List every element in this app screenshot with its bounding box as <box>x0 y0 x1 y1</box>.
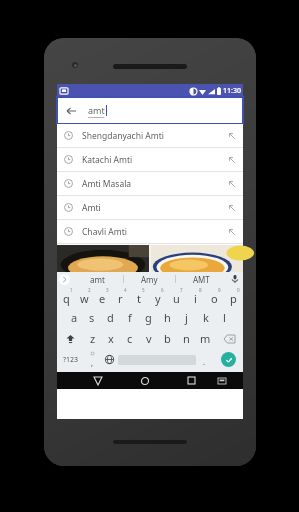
button[interactable]: ?123 <box>57 349 84 370</box>
button[interactable] <box>151 245 243 272</box>
staticText: s <box>89 310 95 325</box>
staticText: f <box>128 310 132 325</box>
button[interactable]: 7 <box>167 286 186 307</box>
staticText: , <box>91 357 94 368</box>
button[interactable]: m <box>196 328 215 349</box>
button[interactable]: z <box>84 328 102 349</box>
button[interactable]: Home <box>128 372 161 389</box>
staticText: r <box>118 291 123 306</box>
staticText: o <box>211 291 218 306</box>
staticText: y <box>155 291 161 306</box>
staticText: 6 <box>161 287 164 293</box>
button[interactable]: 6 <box>148 286 167 307</box>
staticText: e <box>99 291 106 306</box>
button[interactable]: Amti Masala <box>57 172 243 195</box>
button[interactable]: b <box>158 328 177 349</box>
staticText: n <box>183 331 190 346</box>
staticText: l <box>223 310 226 325</box>
button[interactable]: Hide keyboard <box>208 372 236 389</box>
staticText: Amy <box>141 274 158 285</box>
staticText: Chavli Amti <box>82 226 228 238</box>
staticText: 9 <box>218 287 221 293</box>
button[interactable]: x <box>102 328 120 349</box>
staticText: u <box>173 291 180 306</box>
button[interactable]: s <box>83 307 101 328</box>
staticText: 11:30 <box>223 86 241 96</box>
staticText: Katachi Amti <box>82 154 228 166</box>
button[interactable]: Back <box>81 372 114 389</box>
staticText: g <box>145 310 152 325</box>
button[interactable]: 9 <box>205 286 224 307</box>
staticText: m <box>200 331 211 346</box>
button[interactable]: 5 <box>129 286 148 307</box>
button[interactable]: 0 <box>224 286 243 307</box>
button[interactable]: Amy <box>124 272 175 286</box>
staticText: 7 <box>180 287 183 293</box>
button[interactable]: More suggestions <box>57 272 71 286</box>
button[interactable]: Shengdanyachi Amti <box>57 124 243 147</box>
button[interactable]: Back <box>57 97 243 124</box>
staticText: amt <box>90 274 105 285</box>
staticText: amt <box>88 104 105 116</box>
button[interactable]: Chavli Amti <box>57 220 243 243</box>
staticText: w <box>80 291 89 306</box>
button[interactable]: Amti <box>57 196 243 219</box>
button[interactable]: d <box>101 307 120 328</box>
staticText: p <box>230 291 237 306</box>
button[interactable]: Shift <box>57 328 84 349</box>
button[interactable]: 8 <box>186 286 205 307</box>
button[interactable]: 4 <box>111 286 129 307</box>
staticText: d <box>107 310 114 325</box>
staticText: a <box>71 310 78 325</box>
staticText: z <box>90 331 96 346</box>
button[interactable]: Search <box>213 349 243 370</box>
button[interactable]: l <box>215 307 234 328</box>
staticText: Amti Masala <box>82 178 228 190</box>
staticText: 8 <box>199 287 202 293</box>
button[interactable]: g <box>139 307 158 328</box>
button[interactable]: 2 <box>75 286 93 307</box>
button[interactable]: 1 <box>57 286 75 307</box>
button[interactable]: Back <box>64 104 78 118</box>
button[interactable]: Comma <box>84 349 101 370</box>
button[interactable]: n <box>177 328 196 349</box>
staticText: Shengdanyachi Amti <box>82 130 228 142</box>
button[interactable]: Katachi Amti <box>57 148 243 171</box>
staticText: t <box>137 291 141 306</box>
button[interactable]: AMT <box>176 272 227 286</box>
button[interactable]: Voice input <box>227 272 243 286</box>
button[interactable]: v <box>139 328 158 349</box>
button[interactable]: j <box>177 307 196 328</box>
button[interactable]: a <box>65 307 83 328</box>
button[interactable] <box>57 245 149 272</box>
button[interactable]: Period <box>196 349 213 370</box>
button[interactable]: 3 <box>93 286 111 307</box>
staticText: x <box>108 331 114 346</box>
staticText: b <box>164 331 171 346</box>
staticText: i <box>194 291 197 306</box>
staticText: 5 <box>142 287 145 293</box>
staticText: 0 <box>237 287 240 293</box>
button[interactable]: f <box>120 307 139 328</box>
button[interactable]: Recents <box>175 372 208 389</box>
button[interactable]: Backspace <box>215 328 243 349</box>
button[interactable]: amt <box>71 272 123 286</box>
button[interactable]: Change keyboard language <box>101 349 118 370</box>
staticText: v <box>146 331 152 346</box>
button[interactable]: h <box>158 307 177 328</box>
button[interactable]: k <box>196 307 215 328</box>
staticText: k <box>203 310 209 325</box>
staticText: c <box>127 331 133 346</box>
staticText: 4 <box>124 287 127 293</box>
staticText: 1 <box>70 287 73 293</box>
staticText: q <box>63 291 70 306</box>
staticText: ?123 <box>63 355 79 365</box>
staticText: h <box>164 310 171 325</box>
staticText: AMT <box>193 274 210 285</box>
button[interactable]: c <box>120 328 139 349</box>
staticText: Amti <box>82 202 228 214</box>
staticText: 3 <box>106 287 109 293</box>
staticText: . <box>203 356 206 367</box>
staticText: 2 <box>88 287 91 293</box>
